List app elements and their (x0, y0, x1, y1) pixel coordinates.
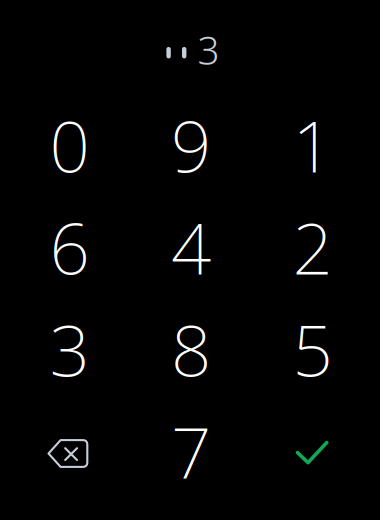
button[interactable]: 6 (9, 196, 130, 298)
staticText: 8 (171, 302, 211, 396)
button[interactable]: 9 (130, 94, 252, 196)
button[interactable]: 2 (252, 196, 373, 298)
button[interactable]: 0 (9, 94, 130, 196)
staticText: 0 (49, 98, 89, 192)
button[interactable]: 5 (252, 298, 373, 400)
staticText: 9 (171, 98, 211, 192)
button[interactable]: 8 (130, 298, 252, 400)
staticText: 3 (198, 24, 220, 75)
button[interactable]: Delete (9, 400, 130, 502)
staticText: 6 (49, 200, 89, 294)
staticText: 4 (171, 200, 211, 294)
staticText: 3 (49, 302, 89, 396)
button[interactable]: 3 (9, 298, 130, 400)
staticText: 5 (293, 302, 333, 396)
staticText: 2 (293, 200, 333, 294)
button[interactable]: 4 (130, 196, 252, 298)
button[interactable]: 1 (252, 94, 373, 196)
button[interactable]: Confirm (252, 400, 373, 502)
staticText: 1 (293, 98, 333, 192)
button[interactable]: 7 (130, 400, 252, 502)
staticText: 7 (171, 404, 211, 498)
